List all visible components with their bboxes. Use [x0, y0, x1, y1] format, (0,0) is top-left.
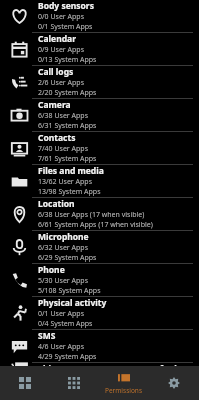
button[interactable]: Physical activity: [0, 297, 199, 330]
button[interactable]: Files and media: [0, 165, 199, 198]
button[interactable]: Settings: [149, 366, 199, 400]
staticText: Body sensors: [38, 0, 94, 12]
staticText: 4/29 System Apps: [38, 352, 97, 362]
staticText: Phone: [38, 264, 65, 276]
staticText: 6/32 User Apps: [38, 243, 89, 253]
staticText: Location: [38, 198, 75, 210]
button[interactable]: Call logs: [0, 66, 199, 99]
staticText: SMS: [38, 330, 56, 342]
staticText: 0/13 System Apps: [38, 55, 97, 65]
button[interactable]: Location: [0, 198, 199, 231]
staticText: 5/108 System Apps: [38, 286, 101, 296]
staticText: 6/29 System Apps: [38, 253, 97, 263]
staticText: Files and media: [38, 165, 104, 177]
staticText: 5/30 User Apps: [38, 276, 89, 286]
staticText: This app can appear on top of other apps: [38, 363, 193, 366]
staticText: Contacts: [38, 132, 76, 144]
staticText: Microphone: [38, 231, 89, 243]
button[interactable]: SMS: [0, 330, 199, 363]
staticText: 6/38 User Apps (17 when visible): [38, 210, 145, 220]
button[interactable]: All apps: [49, 366, 99, 400]
staticText: 0/9 User Apps: [38, 45, 84, 55]
staticText: Camera: [38, 99, 71, 111]
button[interactable]: Permissions: [99, 366, 149, 400]
staticText: 7/61 System Apps: [38, 154, 97, 164]
staticText: Physical activity: [38, 297, 107, 309]
staticText: 4/6 User Apps: [38, 342, 84, 352]
staticText: 13/98 System Apps: [38, 187, 101, 197]
staticText: 0/4 System Apps: [38, 319, 93, 329]
button[interactable]: Apps: [0, 366, 49, 400]
button[interactable]: Phone: [0, 264, 199, 297]
staticText: 0/1 System Apps: [38, 22, 93, 32]
staticText: 7/40 User Apps: [38, 144, 89, 154]
staticText: 0/1 User Apps: [38, 309, 84, 319]
button[interactable]: Body sensors: [0, 0, 199, 33]
button[interactable]: Microphone: [0, 231, 199, 264]
staticText: 6/31 System Apps: [38, 121, 97, 131]
button[interactable]: Camera: [0, 99, 199, 132]
button[interactable]: Calendar: [0, 33, 199, 66]
staticText: 13/62 User Apps: [38, 177, 93, 187]
staticText: 6/38 User Apps: [38, 111, 89, 121]
button[interactable]: This app can appear on top of other apps: [0, 363, 199, 366]
staticText: Call logs: [38, 66, 74, 78]
staticText: Permissions: [105, 386, 143, 395]
staticText: 2/6 User Apps: [38, 78, 84, 88]
staticText: 0/0 User Apps: [38, 12, 84, 22]
button[interactable]: Contacts: [0, 132, 199, 165]
staticText: 2/20 System Apps: [38, 88, 97, 98]
staticText: Calendar: [38, 33, 76, 45]
staticText: 6/61 System Apps (17 when visible): [38, 220, 153, 230]
